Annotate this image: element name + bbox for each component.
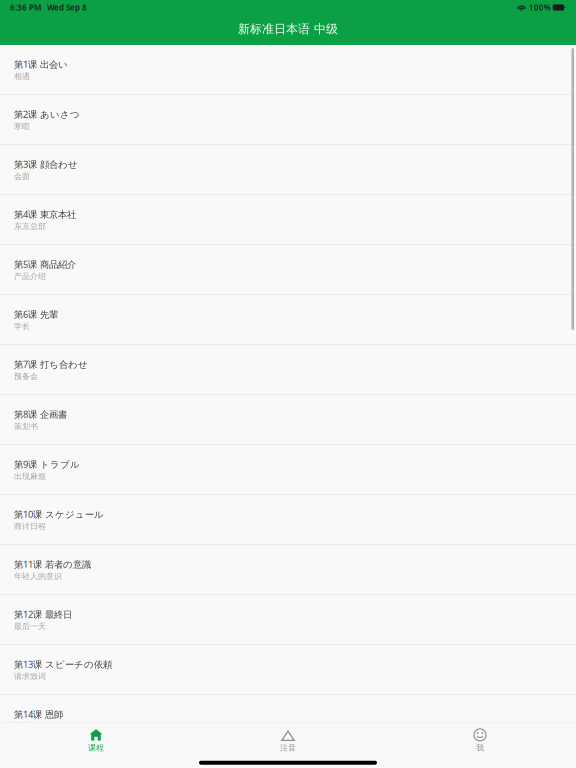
staticText: 6:36 PM (10, 2, 41, 13)
staticText: Wed Sep 8 (47, 2, 87, 13)
button[interactable]: 第11课 若者の意識 (0, 546, 576, 596)
staticText: 第12课 最終日 (14, 608, 72, 620)
staticText: 东京总部 (14, 221, 46, 231)
staticText: 恩师 (14, 721, 30, 731)
button[interactable]: 第13课 スピーチの依頼 (0, 646, 576, 696)
staticText: 注音 (280, 743, 296, 753)
staticText: 会面 (14, 171, 30, 181)
staticText: 第2课 あいさつ (14, 108, 80, 120)
staticText: 第13课 スピーチの依頼 (14, 658, 112, 670)
staticText: 预备会 (14, 371, 38, 381)
staticText: 产品介绍 (14, 271, 46, 281)
staticText: 第4课 東京本社 (14, 208, 76, 220)
staticText: 寒暄 (14, 121, 30, 131)
staticText: 请求致词 (14, 671, 46, 681)
staticText: 第8课 企画書 (14, 408, 67, 420)
staticText: 第7课 打ち合わせ (14, 358, 88, 370)
button[interactable]: 第1课 出会い (0, 46, 576, 96)
button[interactable]: 第10课 スケジュール (0, 496, 576, 546)
button[interactable]: 第12课 最終日 (0, 596, 576, 646)
button[interactable]: 第9课 トラブル (0, 446, 576, 496)
button[interactable]: 第4课 東京本社 (0, 196, 576, 246)
button[interactable]: 第5课 商品紹介 (0, 246, 576, 296)
staticText: 相遇 (14, 71, 30, 81)
staticText: 第10课 スケジュール (14, 508, 104, 520)
staticText: 第1课 出会い (14, 58, 68, 70)
staticText: 我 (476, 743, 484, 753)
staticText: 第6课 先輩 (14, 308, 58, 320)
button[interactable]: 第2课 あいさつ (0, 96, 576, 146)
staticText: 课程 (88, 743, 104, 753)
button[interactable]: 第8课 企画書 (0, 396, 576, 446)
button[interactable]: 第14课 恩師 (0, 696, 576, 746)
staticText: 100% (529, 2, 551, 13)
staticText: 第11课 若者の意識 (14, 558, 91, 570)
staticText: 出现麻烦 (14, 471, 46, 481)
staticText: 第9课 トラブル (14, 458, 80, 470)
staticText: 年轻人的意识 (14, 571, 62, 581)
staticText: 商讨日程 (14, 521, 46, 531)
staticText: 学长 (14, 321, 30, 331)
button[interactable]: 课程 (0, 729, 192, 753)
button[interactable]: 注音 (192, 729, 384, 753)
button[interactable]: 第6课 先輩 (0, 296, 576, 346)
staticText: 策划书 (14, 421, 38, 431)
staticText: 第14课 恩師 (14, 708, 63, 720)
button[interactable]: 第7课 打ち合わせ (0, 346, 576, 396)
staticText: 第3课 顔合わせ (14, 158, 78, 170)
staticText: 最后一天 (14, 621, 46, 631)
button[interactable]: 我 (384, 729, 576, 753)
button[interactable]: 第3课 顔合わせ (0, 146, 576, 196)
staticText: 新标准日本语 中级 (238, 22, 338, 36)
staticText: 第5课 商品紹介 (14, 258, 76, 270)
